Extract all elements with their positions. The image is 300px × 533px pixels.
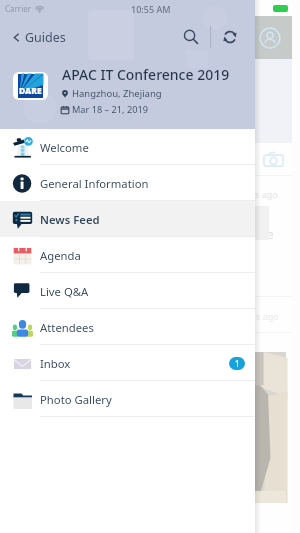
staticText: Guides <box>25 29 66 46</box>
staticText: Photo Gallery <box>40 392 112 407</box>
staticText: s ago <box>255 188 278 200</box>
staticText: General Information <box>40 176 149 191</box>
staticText: Inbox <box>40 356 71 371</box>
staticText: Welcome <box>40 140 89 155</box>
staticText: s ago <box>256 310 279 322</box>
button[interactable]: Guides <box>0 18 74 56</box>
staticText: 1 <box>235 358 240 369</box>
button[interactable]: Refresh <box>211 18 249 56</box>
button[interactable]: Live Q&A <box>0 273 255 309</box>
staticText: Mar 18 – 21, 2019 <box>72 103 148 116</box>
staticText: 10:55 AM <box>131 3 171 15</box>
staticText: Hangzhou, Zhejiang <box>72 87 162 100</box>
staticText: ure <box>253 225 274 243</box>
button[interactable]: Photo Gallery <box>0 381 255 417</box>
staticText: Carrier <box>5 3 32 14</box>
button[interactable]: General Information <box>0 165 255 201</box>
button[interactable]: Agenda <box>0 237 255 273</box>
button[interactable]: Search <box>172 18 210 56</box>
button[interactable]: Attendees <box>0 309 255 345</box>
button[interactable]: Inbox <box>0 345 255 381</box>
staticText: News Feed <box>40 212 100 227</box>
staticText: DARE <box>19 85 42 97</box>
staticText: Agenda <box>40 248 81 263</box>
staticText: Attendees <box>40 320 94 335</box>
staticText: APAC IT Conference 2019 <box>62 65 230 84</box>
staticText: Live Q&A <box>40 284 89 299</box>
button[interactable]: Welcome <box>0 129 255 165</box>
button[interactable]: News Feed <box>0 201 255 237</box>
